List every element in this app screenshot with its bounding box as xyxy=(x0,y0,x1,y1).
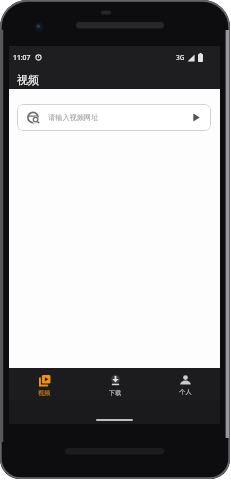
staticText: 请输入视频网址 xyxy=(48,113,99,122)
button[interactable]: 下载 xyxy=(80,371,150,400)
staticText: 个人 xyxy=(179,388,192,396)
button[interactable] xyxy=(183,104,209,131)
staticText: 视频 xyxy=(38,389,51,397)
staticText: 下载 xyxy=(109,389,122,397)
button[interactable]: 视频 xyxy=(9,371,80,400)
staticText: 11:07 xyxy=(13,53,31,62)
staticText: 视频 xyxy=(17,73,39,87)
button[interactable]: 请输入视频网址 xyxy=(17,104,211,131)
button[interactable]: 个人 xyxy=(150,371,220,400)
staticText: 3G xyxy=(176,53,185,62)
